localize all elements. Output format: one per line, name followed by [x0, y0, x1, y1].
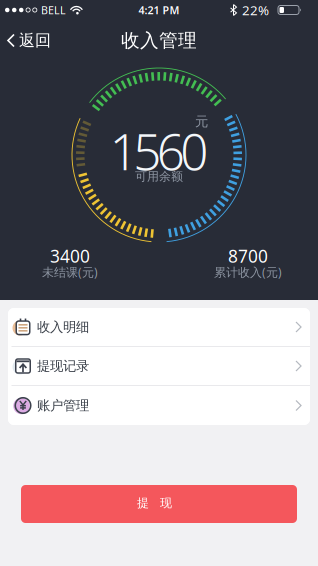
staticText: 提现记录 — [37, 358, 89, 374]
button[interactable]: 返回 — [0, 25, 61, 55]
staticText: 元 — [195, 113, 208, 130]
staticText: 22% — [242, 1, 269, 19]
staticText: 8700 — [228, 244, 268, 267]
staticText: 收入明细 — [37, 319, 89, 335]
button[interactable]: 账户管理 — [8, 386, 310, 425]
staticText: 返回 — [19, 31, 51, 50]
staticText: 可用余额 — [135, 169, 183, 184]
staticText: 4:21 PM — [138, 3, 179, 17]
button[interactable]: 提现记录 — [8, 347, 310, 386]
staticText: 收入管理 — [121, 29, 197, 52]
staticText: 1560 — [110, 118, 208, 184]
button[interactable]: 收入明细 — [8, 308, 310, 347]
staticText: 3400 — [50, 244, 90, 267]
staticText: 未结课(元) — [42, 264, 98, 280]
staticText: 账户管理 — [37, 397, 89, 414]
staticText: 现 — [160, 496, 172, 510]
staticText: 提 — [137, 496, 149, 510]
staticText: 累计收入(元) — [214, 264, 282, 280]
staticText: BELL — [41, 3, 66, 17]
button[interactable]: 提 — [21, 485, 297, 523]
